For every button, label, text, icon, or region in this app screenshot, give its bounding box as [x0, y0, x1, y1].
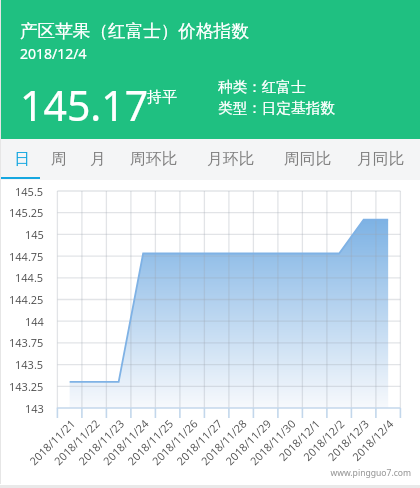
staticText: 周环比	[130, 149, 178, 169]
staticText: 月	[90, 149, 106, 169]
button[interactable]: 周环比	[123, 139, 185, 180]
staticText: 月环比	[207, 149, 255, 169]
staticText: 145.17	[20, 77, 149, 133]
staticText: 周	[51, 149, 67, 169]
staticText: 2018/12/4	[20, 44, 87, 63]
button[interactable]: 周同比	[272, 139, 344, 180]
button[interactable]: 日	[2, 139, 42, 180]
staticText: 产区苹果（红富士）价格指数	[20, 20, 249, 42]
staticText: 类型：日定基指数	[218, 99, 335, 117]
staticText: 日	[14, 149, 30, 169]
button[interactable]: 月同比	[345, 139, 417, 180]
staticText: 周同比	[284, 149, 332, 169]
staticText: 月同比	[357, 149, 405, 169]
staticText: 持平	[147, 88, 177, 107]
button[interactable]: 月环比	[195, 139, 267, 180]
button[interactable]: 月	[74, 139, 121, 180]
button[interactable]: 周	[40, 139, 77, 180]
staticText: 种类：红富士	[218, 78, 306, 96]
